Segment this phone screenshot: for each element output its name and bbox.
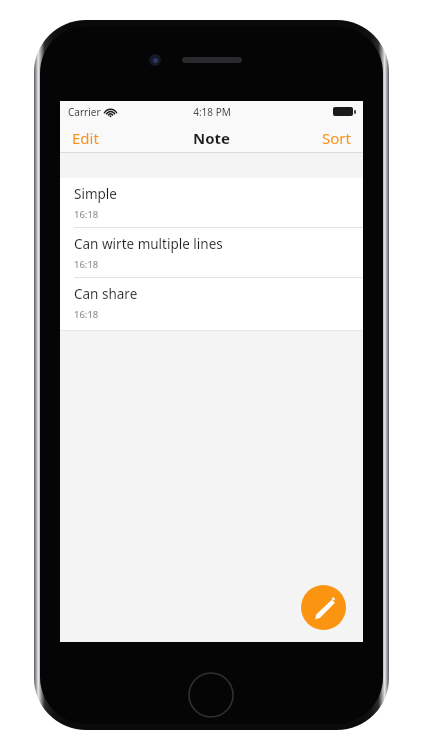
button[interactable]: Simple (60, 178, 363, 228)
button[interactable]: Can share (60, 278, 363, 328)
button[interactable]: Sort (312, 124, 363, 152)
button[interactable]: Can wirte multiple lines (60, 228, 363, 278)
staticText: Can share (74, 285, 138, 303)
staticText: 16:18 (74, 208, 99, 221)
staticText: 16:18 (74, 308, 99, 321)
button[interactable]: Compose new note (301, 585, 346, 630)
staticText: 4:18 PM (193, 105, 231, 119)
staticText: Can wirte multiple lines (74, 235, 223, 253)
staticText: Simple (74, 185, 117, 203)
staticText: 16:18 (74, 258, 99, 271)
staticText: Sort (322, 128, 351, 148)
staticText: Edit (72, 128, 99, 148)
staticText: Carrier (68, 105, 101, 119)
staticText: Note (193, 128, 231, 148)
button[interactable]: Edit (60, 124, 109, 152)
